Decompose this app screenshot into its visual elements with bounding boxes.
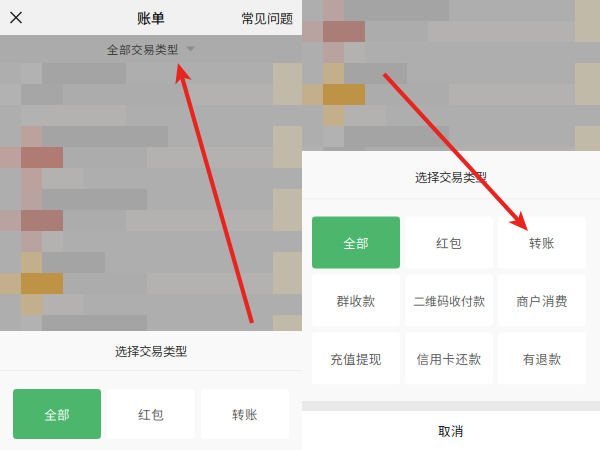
staticText: 选择交易类型 <box>415 167 487 185</box>
staticText: 红包 <box>138 405 164 423</box>
staticText: 转账 <box>232 405 258 423</box>
staticText: 红包 <box>436 233 462 252</box>
staticText: 充值提现 <box>330 349 382 368</box>
button[interactable]: 全部 <box>13 389 101 439</box>
button[interactable]: 充值提现 <box>312 332 400 384</box>
staticText: 选择交易类型 <box>115 341 187 359</box>
button[interactable]: 转账 <box>201 389 289 439</box>
button[interactable]: 全部 <box>312 216 400 268</box>
button[interactable]: 常见问题 <box>232 0 302 35</box>
button[interactable]: 商户消费 <box>498 274 586 326</box>
staticText: 有退款 <box>522 349 561 368</box>
staticText: 群收款 <box>336 291 375 310</box>
staticText: 转账 <box>529 233 555 252</box>
button[interactable]: 红包 <box>107 389 195 439</box>
staticText: 信用卡还款 <box>416 349 481 368</box>
button[interactable]: 信用卡还款 <box>405 332 493 384</box>
button[interactable]: 红包 <box>405 216 493 268</box>
staticText: 二维码收付款 <box>413 292 485 309</box>
button[interactable]: 全部交易类型 <box>0 35 302 63</box>
button[interactable]: 二维码收付款 <box>405 274 493 326</box>
button[interactable]: 转账 <box>498 216 586 268</box>
button[interactable]: 有退款 <box>498 332 586 384</box>
staticText: 常见问题 <box>241 8 293 27</box>
staticText: 商户消费 <box>516 291 568 310</box>
staticText: 全部交易类型 <box>107 41 179 57</box>
button[interactable]: 关闭 <box>0 0 32 35</box>
staticText: 全部 <box>44 405 70 423</box>
staticText: 全部 <box>343 233 369 252</box>
button[interactable]: 群收款 <box>312 274 400 326</box>
staticText: 取消 <box>438 421 464 440</box>
staticText: 账单 <box>137 7 165 28</box>
button[interactable]: 取消 <box>302 411 600 450</box>
